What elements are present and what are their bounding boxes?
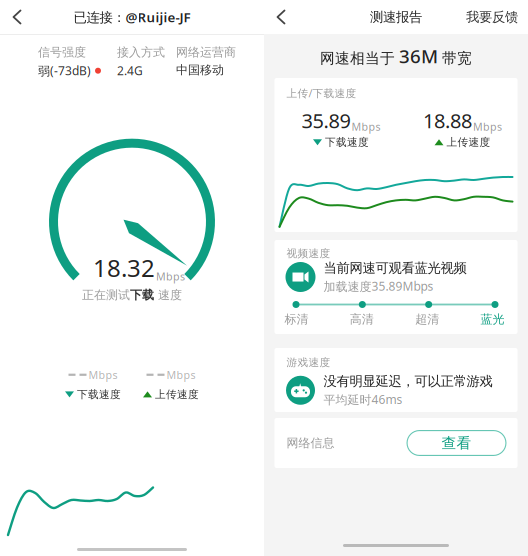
staticText: 标清 — [284, 312, 308, 327]
staticText: 信号强度 — [38, 45, 86, 60]
button[interactable]: 查看 — [406, 430, 506, 456]
staticText: 正在测试 — [82, 287, 130, 302]
staticText: 18.88 — [423, 107, 472, 134]
staticText: Mbps — [351, 120, 380, 134]
staticText: Mbps — [473, 120, 502, 134]
staticText: 高清 — [350, 312, 374, 327]
staticText: 36M — [399, 44, 438, 68]
staticText: 网络信息 — [286, 436, 334, 450]
staticText: 35.89 — [301, 107, 350, 134]
staticText: 18.32 — [93, 252, 155, 284]
staticText: 上传速度 — [446, 136, 490, 149]
staticText: Mbps — [88, 368, 117, 382]
staticText: 平均延时46ms — [323, 391, 402, 407]
staticText: 已连接：@Ruijie-JF — [73, 8, 190, 26]
button[interactable]: Back — [264, 0, 298, 35]
staticText: 接入方式 — [117, 45, 165, 60]
staticText: 蓝光 — [480, 312, 504, 327]
staticText: 中国移动 — [176, 63, 224, 77]
staticText: 上传速度 — [155, 388, 199, 401]
staticText: 下载速度 — [325, 136, 369, 149]
staticText: 视频速度 — [286, 247, 330, 260]
staticText: 上传/下载速度 — [286, 86, 356, 100]
staticText: Mbps — [166, 368, 195, 382]
staticText: 网络运营商 — [176, 45, 236, 60]
staticText: 下载速度 — [77, 388, 121, 401]
staticText: 超清 — [415, 312, 439, 327]
staticText: 网速相当于 — [320, 49, 399, 67]
staticText: 下载 — [130, 287, 154, 302]
staticText: Mbps — [156, 269, 185, 284]
staticText: 带宽 — [438, 49, 472, 67]
button[interactable]: Back — [0, 0, 34, 35]
staticText: 速度 — [154, 287, 182, 302]
staticText: 游戏速度 — [286, 356, 330, 369]
staticText: 弱(-73dB) — [38, 63, 91, 79]
staticText: 查看 — [441, 434, 471, 452]
staticText: 2.4G — [117, 63, 143, 79]
staticText: 没有明显延迟，可以正常游戏 — [323, 373, 492, 389]
staticText: 我要反馈 — [466, 9, 518, 25]
button[interactable]: 我要反馈 — [466, 0, 528, 35]
staticText: 当前网速可观看蓝光视频 — [323, 260, 466, 276]
staticText: 加载速度35.89Mbps — [323, 278, 433, 294]
staticText: 测速报告 — [370, 9, 422, 25]
